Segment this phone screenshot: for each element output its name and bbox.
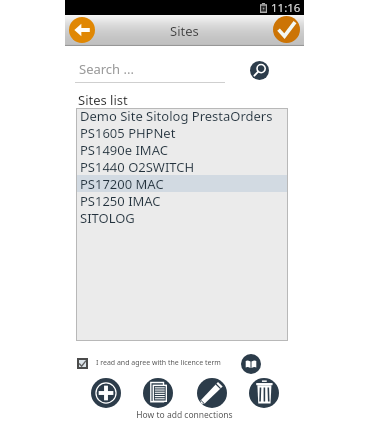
button[interactable]: Add: [91, 378, 121, 408]
button[interactable]: Search: [250, 61, 269, 80]
staticText: 11:16: [271, 0, 301, 15]
button[interactable]: I read and agree with the licence term: [77, 358, 88, 369]
staticText: How to add connections: [65, 409, 304, 421]
staticText: PS17200 MAC: [80, 175, 164, 192]
staticText: I read and agree with the licence term: [96, 358, 221, 368]
button[interactable]: PS1440 O2SWITCH: [76, 158, 288, 175]
button[interactable]: Validate: [273, 16, 300, 43]
button[interactable]: Edit: [197, 378, 227, 408]
staticText: Search ...: [79, 60, 134, 78]
button[interactable]: PS1490e IMAC: [76, 141, 288, 158]
staticText: Demo Site Sitolog PrestaOrders: [80, 107, 273, 124]
button[interactable]: PS1605 PHPNet: [76, 124, 288, 141]
button[interactable]: Help: [241, 354, 261, 374]
staticText: PS1440 O2SWITCH: [80, 158, 195, 175]
button[interactable]: SITOLOG: [76, 209, 288, 226]
staticText: PS1605 PHPNet: [80, 124, 176, 141]
button[interactable]: Back: [69, 17, 95, 43]
staticText: Sites list: [78, 91, 128, 109]
button[interactable]: PS17200 MAC: [76, 175, 288, 192]
button[interactable]: Demo Site Sitolog PrestaOrders: [76, 107, 288, 124]
staticText: SITOLOG: [80, 209, 135, 226]
button[interactable]: Duplicate: [143, 378, 173, 408]
button[interactable]: Delete: [249, 378, 279, 408]
button[interactable]: PS1250 IMAC: [76, 192, 288, 209]
staticText: PS1250 IMAC: [80, 192, 161, 209]
staticText: Sites: [170, 22, 199, 40]
staticText: PS1490e IMAC: [80, 141, 168, 158]
